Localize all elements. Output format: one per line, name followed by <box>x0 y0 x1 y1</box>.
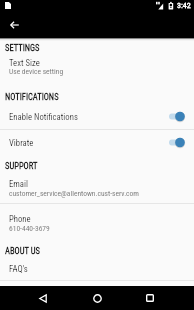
button[interactable]: Email <box>0 175 194 203</box>
staticText: Vibrate <box>9 138 34 148</box>
staticText: customer_service@allentown.cust-serv.com <box>9 189 139 198</box>
staticText: NOTIFICATIONS <box>5 92 59 102</box>
button[interactable]: Recent apps <box>133 286 167 310</box>
button[interactable]: Phone <box>0 210 194 238</box>
staticText: 3:42 <box>177 1 191 10</box>
staticText: SUPPORT <box>5 161 38 171</box>
staticText: ABOUT US <box>5 246 40 256</box>
button[interactable]: Vibrate <box>0 130 194 155</box>
button[interactable]: Home <box>80 286 114 310</box>
staticText: 610-440-3679 <box>9 224 50 233</box>
button[interactable]: Text Size <box>0 54 194 82</box>
button[interactable]: Navigate up <box>4 14 25 35</box>
button[interactable]: FAQ's <box>0 258 194 278</box>
staticText: Email <box>9 179 29 189</box>
button[interactable]: Back <box>26 286 60 310</box>
staticText: SETTINGS <box>5 43 40 53</box>
staticText: FAQ's <box>9 264 28 274</box>
staticText: Text Size <box>9 58 40 68</box>
staticText: Enable Notifications <box>9 112 78 122</box>
staticText: Phone <box>9 214 31 224</box>
staticText: Use device setting <box>9 67 64 76</box>
button[interactable]: Enable Notifications <box>0 104 194 129</box>
